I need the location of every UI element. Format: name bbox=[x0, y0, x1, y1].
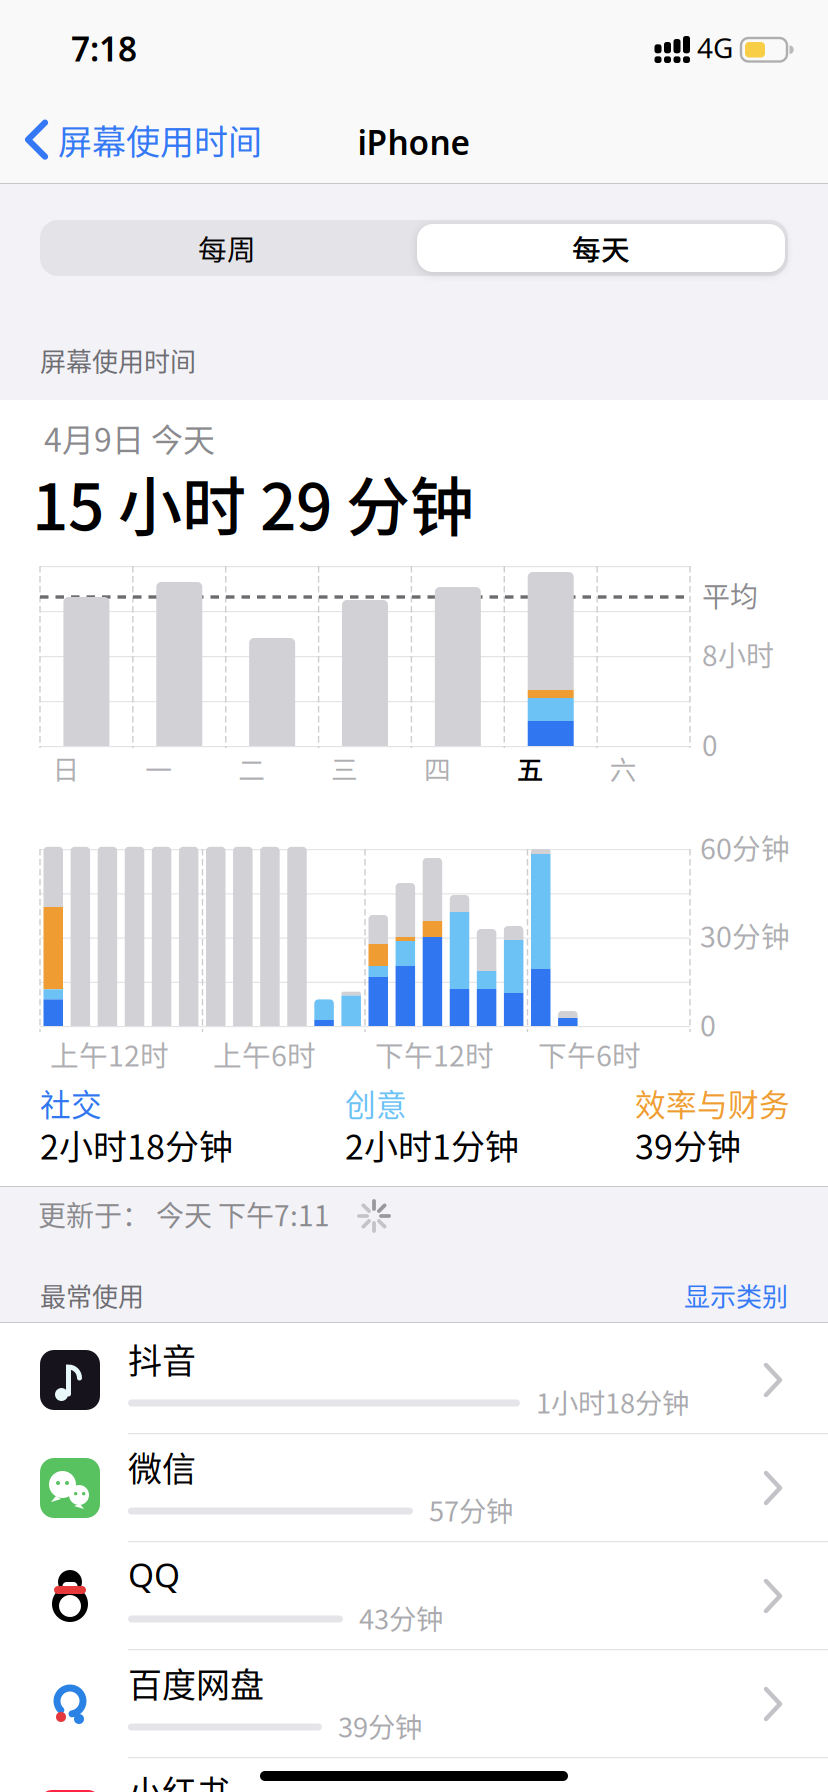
staticText: 上午12时 bbox=[50, 1033, 169, 1075]
staticText: 7:18 bbox=[71, 26, 137, 71]
staticText: 六 bbox=[610, 749, 637, 787]
staticText: 创意 bbox=[345, 1081, 407, 1125]
staticText: 4G bbox=[697, 29, 733, 66]
staticText: 4月9日 今天 bbox=[44, 415, 215, 461]
button[interactable]: 显示类别 bbox=[684, 1276, 788, 1314]
staticText: 平均 bbox=[702, 575, 758, 615]
button[interactable]: QQ bbox=[0, 1542, 828, 1650]
staticText: 上午6时 bbox=[213, 1033, 316, 1075]
staticText: 39分钟 bbox=[338, 1706, 422, 1745]
button[interactable]: 每天 bbox=[414, 220, 788, 276]
button[interactable]: 小红书 bbox=[0, 1758, 828, 1792]
staticText: 每天 bbox=[572, 227, 630, 269]
staticText: 下午12时 bbox=[375, 1033, 494, 1075]
staticText: 2小时18分钟 bbox=[40, 1120, 233, 1169]
staticText: 最常使用 bbox=[40, 1276, 144, 1314]
staticText: 0 bbox=[700, 1003, 716, 1045]
staticText: 57分钟 bbox=[429, 1490, 513, 1529]
staticText: 效率与财务 bbox=[635, 1081, 790, 1125]
staticText: 二 bbox=[238, 749, 265, 787]
staticText: 屏幕使用时间 bbox=[58, 115, 262, 164]
staticText: 抖音 bbox=[128, 1334, 196, 1383]
button[interactable]: 百度网盘 bbox=[0, 1650, 828, 1758]
staticText: 屏幕使用时间 bbox=[40, 341, 196, 379]
staticText: 四 bbox=[424, 749, 451, 787]
button[interactable]: 微信 bbox=[0, 1434, 828, 1542]
staticText: 社交 bbox=[40, 1081, 102, 1125]
staticText: 43分钟 bbox=[359, 1598, 443, 1637]
staticText: 30分钟 bbox=[700, 914, 790, 956]
staticText: 60分钟 bbox=[700, 826, 790, 868]
staticText: 2小时1分钟 bbox=[345, 1120, 519, 1169]
staticText: 0 bbox=[702, 724, 718, 764]
staticText: iPhone bbox=[357, 120, 470, 164]
staticText: 三 bbox=[331, 749, 358, 787]
staticText: 五 bbox=[517, 749, 544, 787]
button[interactable]: 每周 bbox=[40, 220, 414, 276]
button[interactable]: 返回 屏幕使用时间 bbox=[25, 115, 262, 164]
staticText: 下午6时 bbox=[538, 1033, 641, 1075]
staticText: QQ bbox=[128, 1552, 180, 1597]
staticText: 微信 bbox=[128, 1442, 196, 1491]
staticText: 每周 bbox=[198, 227, 256, 269]
staticText: 8小时 bbox=[702, 634, 774, 674]
button[interactable]: 抖音 bbox=[0, 1326, 828, 1434]
staticText: 15 小时 29 分钟 bbox=[32, 456, 474, 549]
staticText: 39分钟 bbox=[635, 1120, 741, 1169]
staticText: 小红书 bbox=[128, 1766, 230, 1792]
staticText: 日 bbox=[52, 749, 79, 787]
staticText: 1小时18分钟 bbox=[536, 1382, 689, 1421]
staticText: 更新于： 今天 下午7:11 bbox=[38, 1194, 330, 1234]
staticText: 一 bbox=[145, 749, 172, 787]
staticText: 百度网盘 bbox=[128, 1658, 264, 1707]
staticText: 显示类别 bbox=[684, 1276, 788, 1314]
